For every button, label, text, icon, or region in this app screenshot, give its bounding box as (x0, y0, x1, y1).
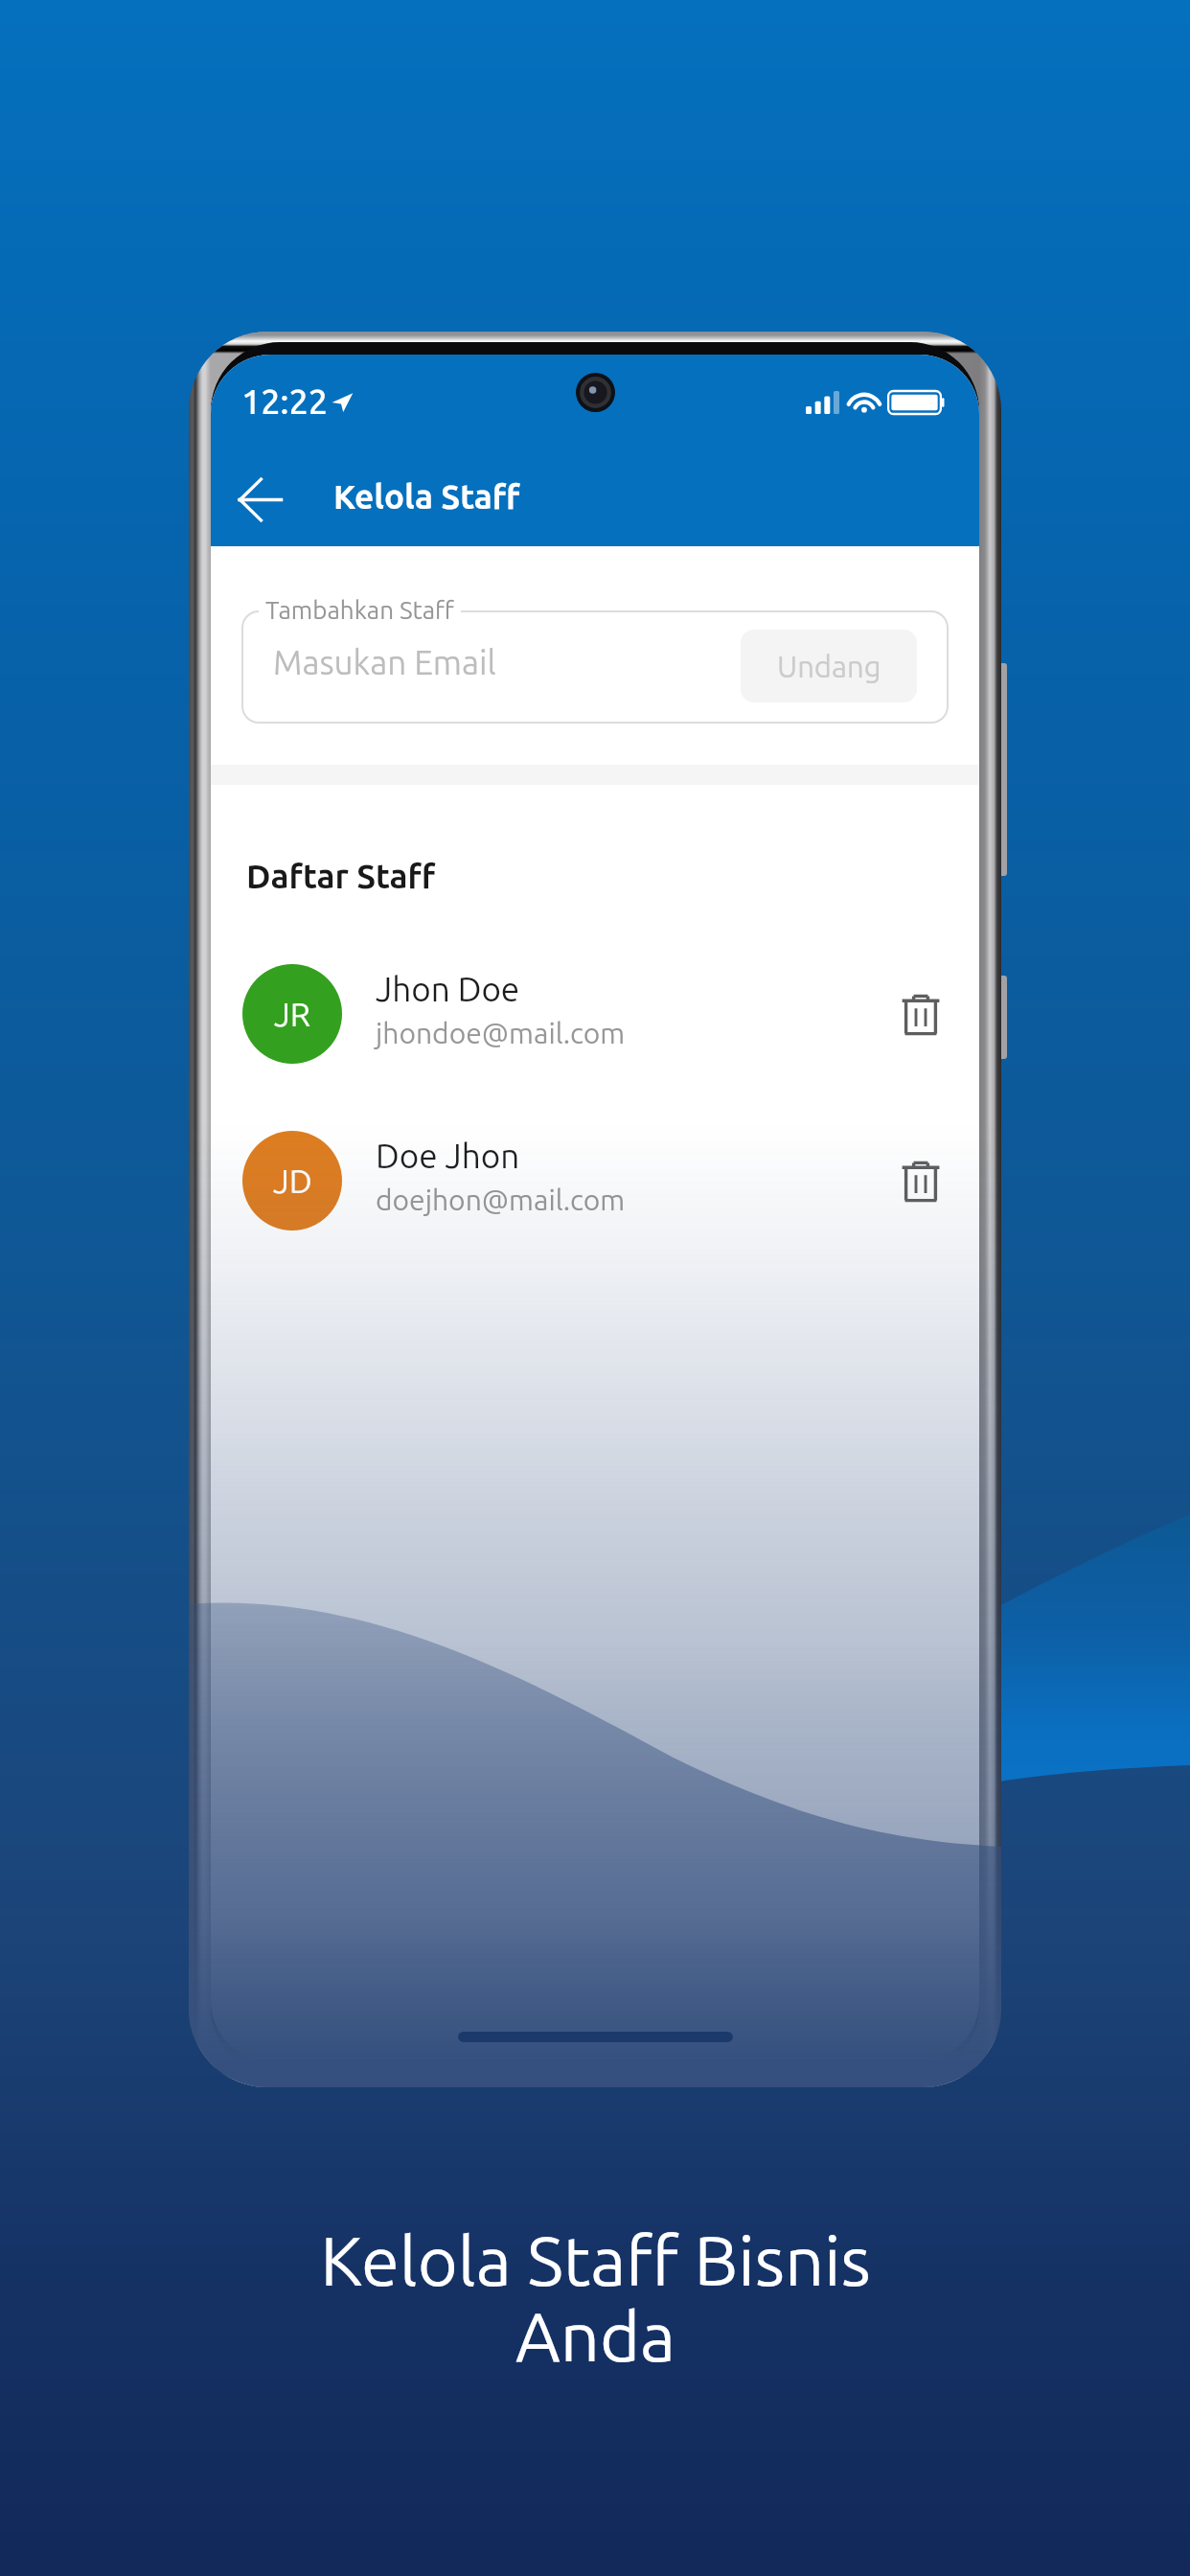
button[interactable]: JD (211, 1129, 979, 1296)
staticText: doejhon@mail.com (376, 1184, 626, 1216)
staticText: jhondoe@mail.com (376, 1017, 626, 1049)
staticText: Daftar Staff (246, 857, 436, 894)
staticText: Jhon Doe (376, 970, 520, 1007)
button[interactable]: Delete staff (878, 972, 964, 1058)
button[interactable]: Delete staff (878, 1138, 964, 1225)
staticText: JD (273, 1162, 312, 1199)
button[interactable]: Undang (741, 630, 917, 702)
staticText: Masukan Email (273, 643, 496, 680)
staticText: Kelola Staff (333, 477, 520, 515)
button[interactable]: JR (211, 962, 979, 1129)
staticText: 12:22 (241, 381, 329, 420)
staticText: Doe Jhon (376, 1137, 520, 1174)
staticText: Tambahkan Staff (265, 596, 454, 624)
button[interactable]: Back (223, 463, 296, 536)
staticText: Kelola Staff Bisnis Anda (320, 2221, 871, 2374)
staticText: Undang (777, 650, 881, 683)
staticText: JR (274, 996, 310, 1032)
